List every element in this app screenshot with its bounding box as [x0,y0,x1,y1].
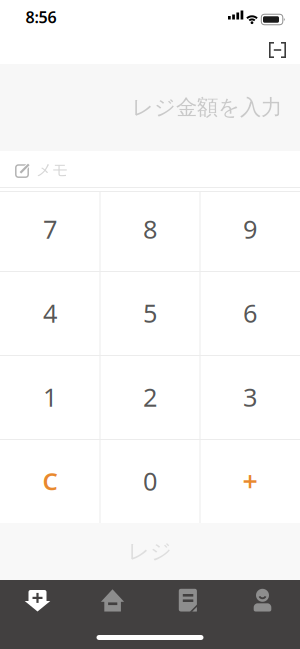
button[interactable]: キーボードを閉じる [269,38,300,58]
staticText: 0 [143,464,157,498]
button[interactable]: レジ金額を入力 [0,64,300,151]
staticText: 8:56 [25,6,56,28]
staticText: 1 [43,380,57,414]
button[interactable]: 0 [100,439,200,523]
button[interactable]: ホーム [75,580,150,649]
button[interactable]: 8 [100,187,200,271]
button[interactable]: レジ投入 [0,580,75,649]
button[interactable]: 2 [100,355,200,439]
staticText: 7 [43,212,57,246]
button[interactable]: + [200,439,300,523]
button[interactable]: 6 [200,271,300,355]
staticText: 2 [143,380,157,414]
button[interactable]: 履歴 [150,580,225,649]
button[interactable]: 3 [200,355,300,439]
staticText: 5 [143,296,157,330]
button[interactable]: 7 [0,187,100,271]
button[interactable]: 5 [100,271,200,355]
button[interactable]: アカウント [225,580,300,649]
staticText: C [42,465,57,497]
button[interactable]: 4 [0,271,100,355]
staticText: + [242,463,257,499]
staticText: 4 [43,296,57,330]
staticText: 8 [143,212,157,246]
staticText: レジ金額を入力 [132,94,282,121]
staticText: 3 [243,380,257,414]
staticText: メモ [36,160,68,180]
button[interactable]: 1 [0,355,100,439]
button[interactable]: メモ [0,151,300,187]
staticText: 9 [243,212,257,246]
button[interactable]: C [0,439,100,523]
staticText: 6 [243,296,257,330]
staticText: レジ [128,538,172,565]
button[interactable]: 9 [200,187,300,271]
